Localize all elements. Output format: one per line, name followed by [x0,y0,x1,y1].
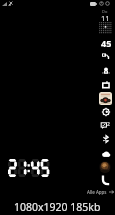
button[interactable]: Phone [101,176,110,185]
staticText: Alle Apps [87,189,107,195]
button[interactable]: News app [99,92,112,105]
button[interactable]: Contacts [101,66,110,75]
button[interactable]: Messages [101,121,110,130]
button[interactable]: Bluetooth [101,134,110,143]
staticText: 1080x1920 185kb [14,200,101,214]
button[interactable]: Contact [99,161,111,173]
button[interactable]: Alle Apps [86,188,115,196]
button[interactable]: Screen recorder [101,52,110,61]
staticText: 45 [101,37,112,49]
staticText: 11 [101,13,110,23]
staticText: Do [102,9,108,14]
button[interactable]: Camera [101,80,110,89]
button[interactable]: Settings [101,107,110,116]
button[interactable]: Calendar [99,22,112,34]
staticText: 2 [107,121,110,128]
button[interactable]: Weather [101,149,110,158]
